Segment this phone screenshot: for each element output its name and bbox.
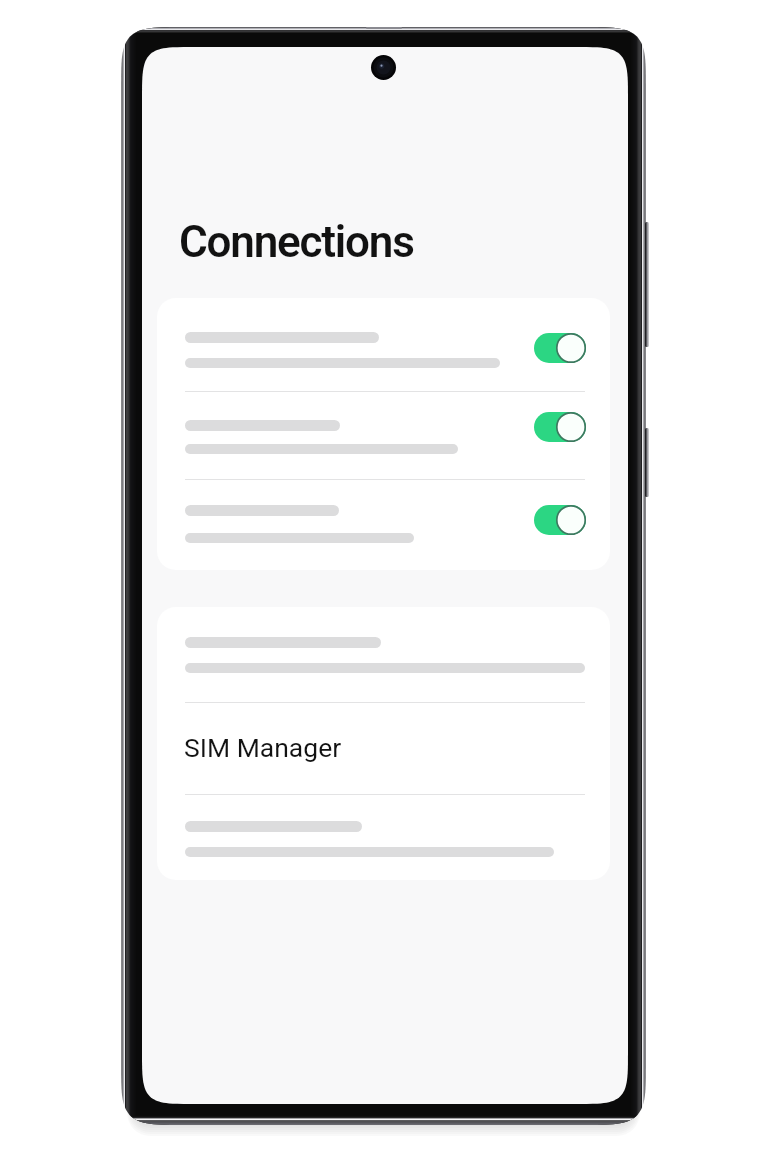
button[interactable]: Power	[645, 428, 649, 497]
button[interactable]: Toggle switch	[534, 505, 586, 535]
staticText: SIM Manager	[184, 732, 342, 763]
button[interactable]: Toggle switch	[157, 480, 610, 568]
button[interactable]: Toggle switch	[157, 306, 610, 391]
staticText: Connections	[179, 216, 414, 268]
button[interactable]: Toggle switch	[534, 333, 586, 363]
button[interactable]	[157, 611, 610, 701]
button[interactable]: SIM Manager	[157, 703, 610, 793]
button[interactable]: Toggle switch	[534, 412, 586, 442]
button[interactable]: Toggle switch	[157, 392, 610, 479]
button[interactable]	[157, 795, 610, 880]
button[interactable]: Volume	[645, 222, 649, 347]
